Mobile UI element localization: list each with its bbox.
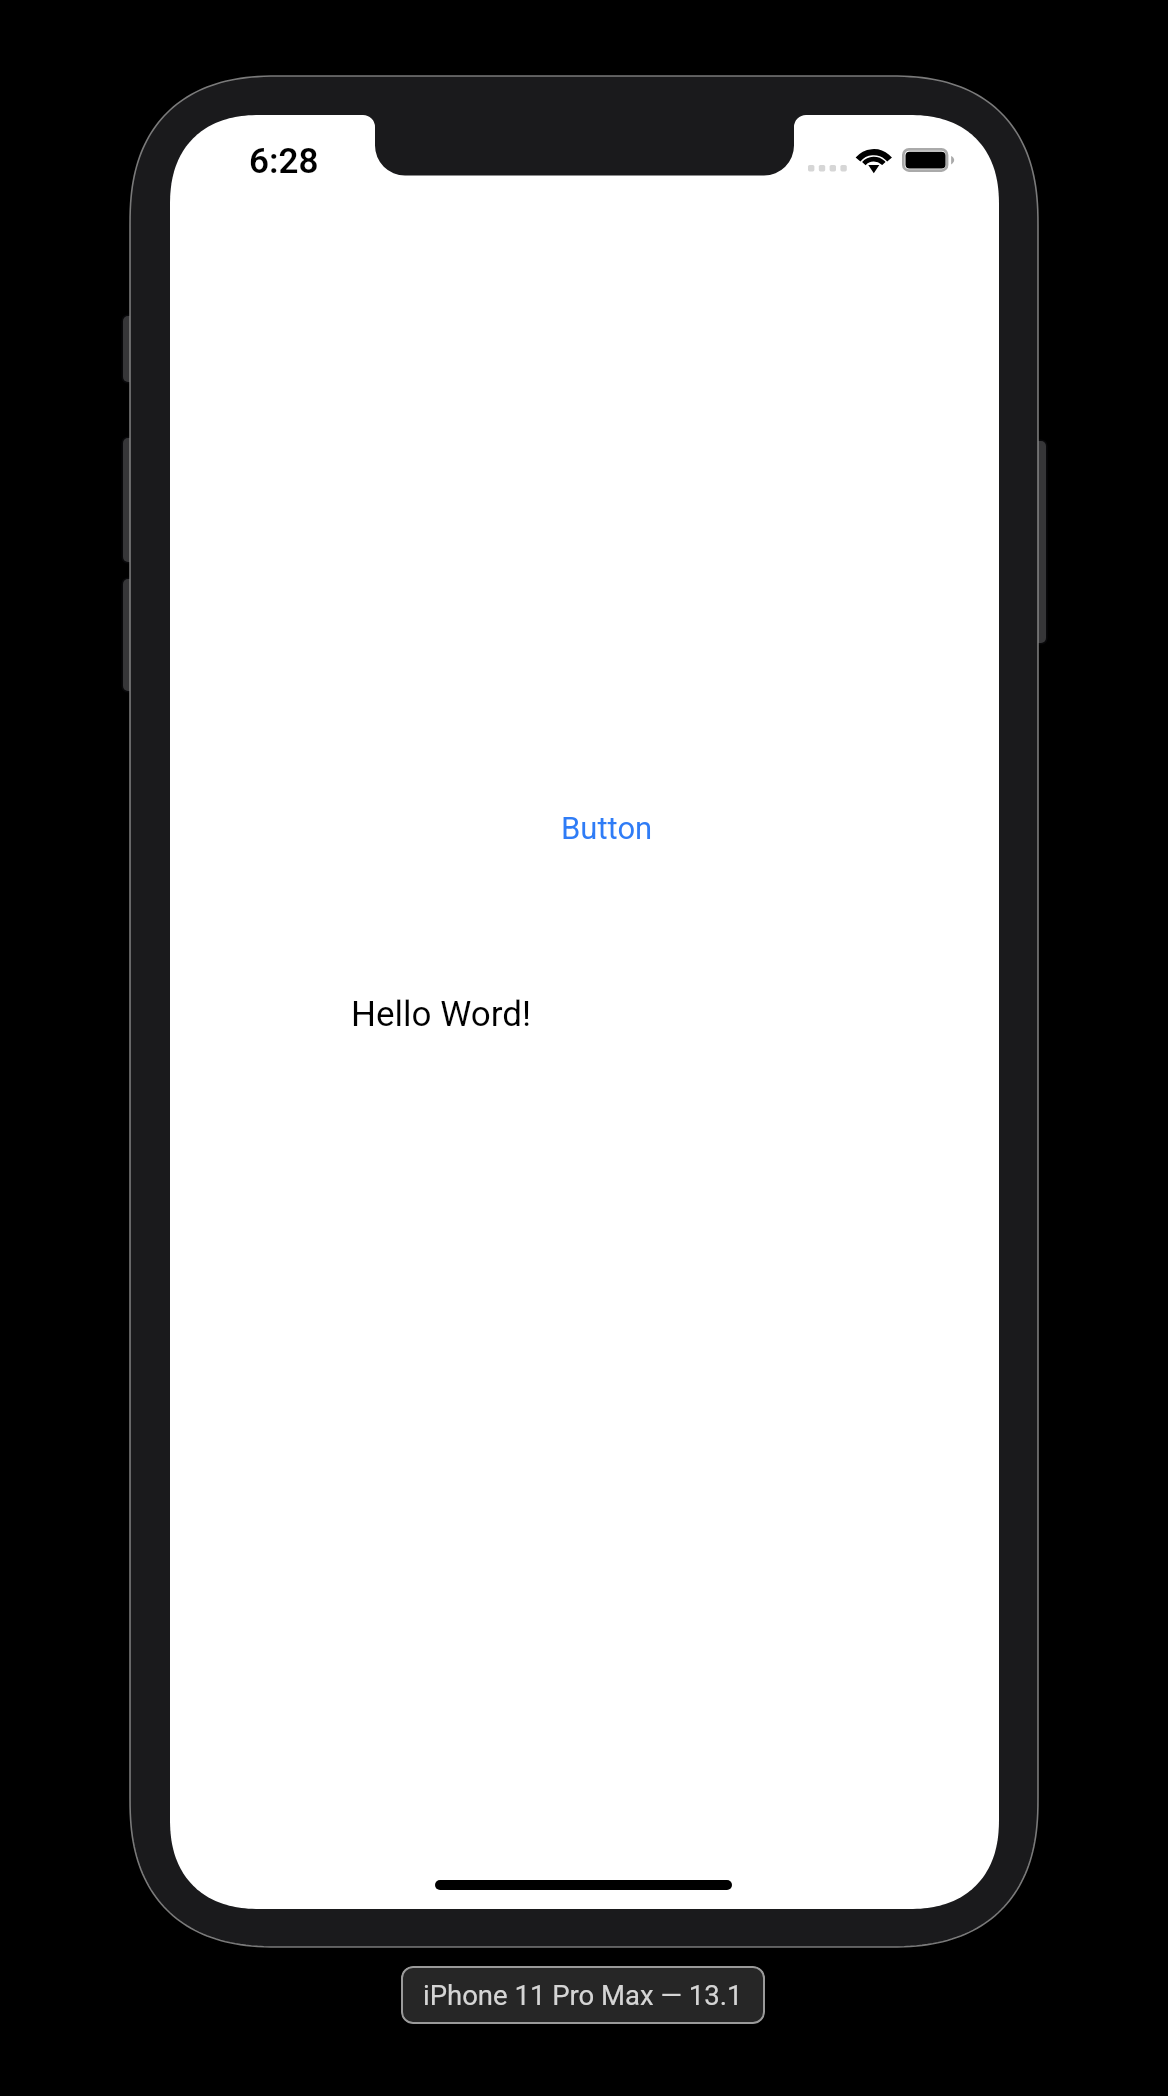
button[interactable]: Button [543,794,671,860]
other: Battery full [902,148,955,173]
button[interactable]: Volume down [123,579,132,691]
button[interactable]: Volume up [123,438,132,562]
button[interactable]: Side button [1037,441,1046,643]
staticText: Button [561,810,653,846]
other: Home indicator [435,1880,732,1890]
staticText: Hello Word! [351,994,531,1035]
other: Cellular signal [808,165,846,173]
button[interactable]: iPhone 11 Pro Max — 13.1 [401,1966,765,2024]
staticText: 6:28 [249,141,319,182]
button[interactable]: Ring / silent switch [123,316,132,382]
other: Wi-Fi [858,148,891,172]
staticText: iPhone 11 Pro Max — 13.1 [423,1979,743,2011]
